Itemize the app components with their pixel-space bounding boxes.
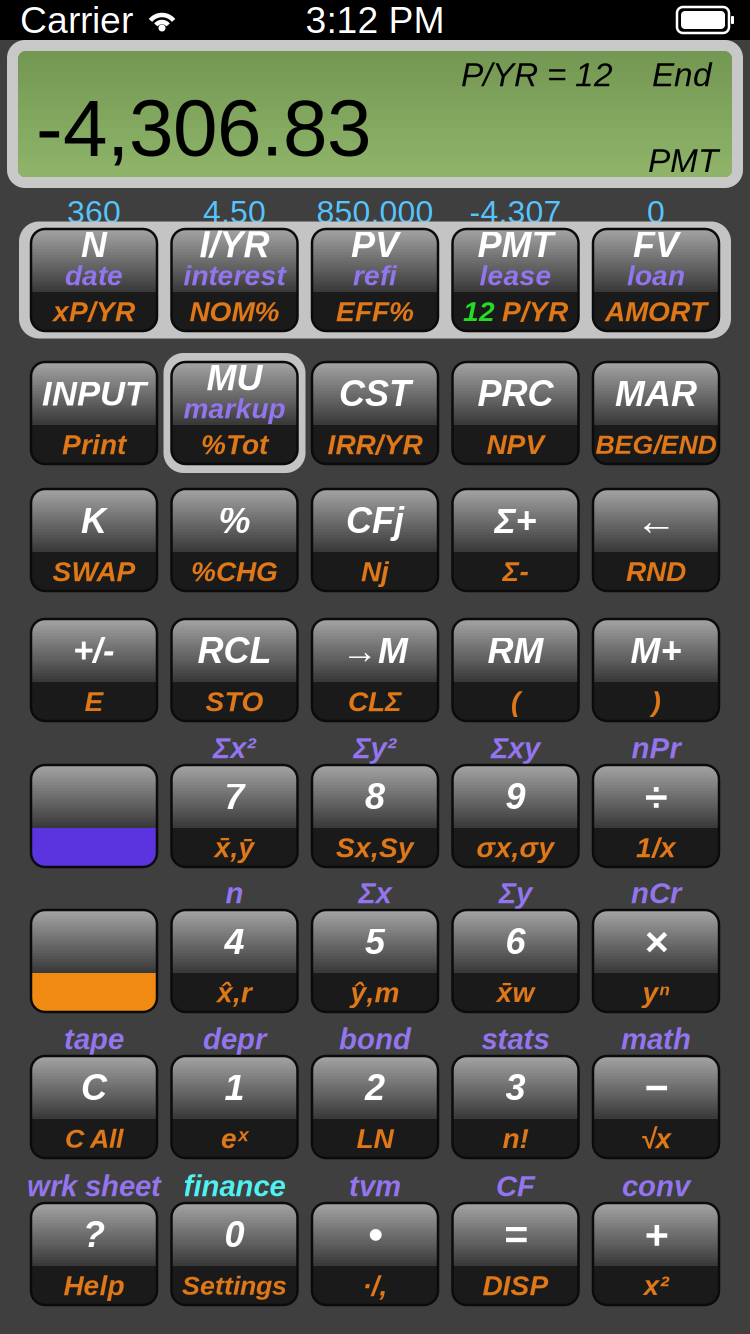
staticText: 0: [647, 194, 665, 230]
button[interactable]: PV: [312, 229, 438, 331]
button[interactable]: RM: [452, 619, 578, 721]
button[interactable]: CST: [312, 362, 438, 464]
staticText: -4,306.83: [36, 83, 371, 172]
button[interactable]: PRC: [452, 362, 578, 464]
staticText: 1/x: [636, 832, 676, 863]
button[interactable]: 2: [312, 1056, 438, 1158]
button[interactable]: 1: [171, 1056, 297, 1158]
staticText: conv: [622, 1170, 690, 1202]
staticText: EFF%: [336, 296, 414, 327]
staticText: 3:12 PM: [305, 0, 444, 41]
button[interactable]: +/-: [31, 619, 157, 721]
button[interactable]: ?: [31, 1203, 157, 1305]
button[interactable]: 5: [312, 910, 438, 1012]
button[interactable]: ×: [593, 910, 719, 1012]
staticText: wrk sheet: [27, 1170, 161, 1202]
staticText: ÷: [644, 773, 667, 820]
staticText: Print: [62, 429, 126, 460]
button[interactable]: ÷: [593, 765, 719, 867]
staticText: RND: [626, 556, 686, 587]
staticText: ŷ,m: [350, 977, 399, 1008]
button[interactable]: INPUT: [31, 362, 157, 464]
staticText: =: [503, 1211, 527, 1258]
staticText: E: [84, 686, 103, 717]
button[interactable]: FV: [593, 229, 719, 331]
staticText: lease: [479, 260, 551, 291]
button[interactable]: 9: [452, 765, 578, 867]
staticText: •: [368, 1211, 382, 1258]
staticText: RCL: [197, 630, 271, 671]
staticText: N: [81, 225, 107, 265]
button[interactable]: Σ+: [452, 489, 578, 591]
staticText: K: [81, 500, 107, 541]
staticText: nPr: [631, 732, 680, 764]
staticText: %Tot: [201, 429, 268, 460]
staticText: BEG/END: [595, 430, 716, 459]
staticText: 1: [224, 1067, 244, 1108]
button[interactable]: •: [312, 1203, 438, 1305]
staticText: P/YR = 12: [461, 56, 613, 93]
button[interactable]: C: [31, 1056, 157, 1158]
staticText: ?: [83, 1214, 105, 1255]
staticText: Sx,Sy: [336, 832, 414, 863]
button[interactable]: MAR: [593, 362, 719, 464]
staticText: ×: [644, 918, 668, 965]
button[interactable]: shift: [31, 910, 157, 1012]
button[interactable]: 3: [452, 1056, 578, 1158]
button[interactable]: 6: [452, 910, 578, 1012]
button[interactable]: −: [593, 1056, 719, 1158]
button[interactable]: 0: [171, 1203, 297, 1305]
staticText: I/YR: [199, 225, 269, 265]
button[interactable]: =: [452, 1203, 578, 1305]
staticText: Help: [63, 1270, 124, 1301]
staticText: PRC: [477, 373, 553, 414]
staticText: bond: [339, 1023, 411, 1055]
staticText: 12: [463, 296, 495, 327]
button[interactable]: shift: [31, 765, 157, 867]
button[interactable]: RCL: [171, 619, 297, 721]
button[interactable]: CFj: [312, 489, 438, 591]
staticText: nCr: [631, 877, 681, 909]
staticText: depr: [203, 1023, 266, 1055]
staticText: 2: [365, 1067, 385, 1108]
staticText: date: [65, 260, 123, 291]
staticText: LN: [356, 1123, 393, 1154]
staticText: Σx: [358, 877, 391, 909]
button[interactable]: N: [31, 229, 157, 331]
staticText: PMT: [648, 142, 718, 179]
staticText: loan: [627, 260, 685, 291]
button[interactable]: M+: [593, 619, 719, 721]
staticText: x²: [643, 1270, 668, 1301]
staticText: σx,σy: [476, 832, 554, 863]
staticText: Carrier: [20, 0, 133, 41]
staticText: 4: [224, 921, 244, 962]
staticText: P/YR: [502, 296, 568, 327]
staticText: →M: [342, 630, 408, 671]
button[interactable]: 8: [312, 765, 438, 867]
button[interactable]: 7: [171, 765, 297, 867]
staticText: 850,000: [316, 194, 433, 230]
staticText: 0: [224, 1214, 244, 1255]
staticText: C All: [65, 1124, 123, 1153]
button[interactable]: K: [31, 489, 157, 591]
staticText: eˣ: [221, 1123, 248, 1154]
button[interactable]: PMT: [452, 229, 578, 331]
staticText: −: [644, 1064, 668, 1111]
staticText: 7: [224, 776, 244, 817]
staticText: AMORT: [605, 296, 707, 327]
button[interactable]: →M: [312, 619, 438, 721]
staticText: %: [218, 500, 250, 541]
staticText: %CHG: [191, 556, 278, 587]
staticText: PV: [351, 225, 399, 265]
button[interactable]: %: [171, 489, 297, 591]
button[interactable]: +: [593, 1203, 719, 1305]
staticText: 6: [505, 921, 525, 962]
staticText: IRR/YR: [327, 429, 422, 460]
button[interactable]: 4: [171, 910, 297, 1012]
staticText: Σ+: [494, 500, 536, 541]
button[interactable]: ←: [593, 489, 719, 591]
button[interactable]: MU: [171, 362, 297, 464]
button[interactable]: I/YR: [171, 229, 297, 331]
staticText: CF: [496, 1170, 535, 1202]
staticText: PMT: [477, 225, 553, 265]
